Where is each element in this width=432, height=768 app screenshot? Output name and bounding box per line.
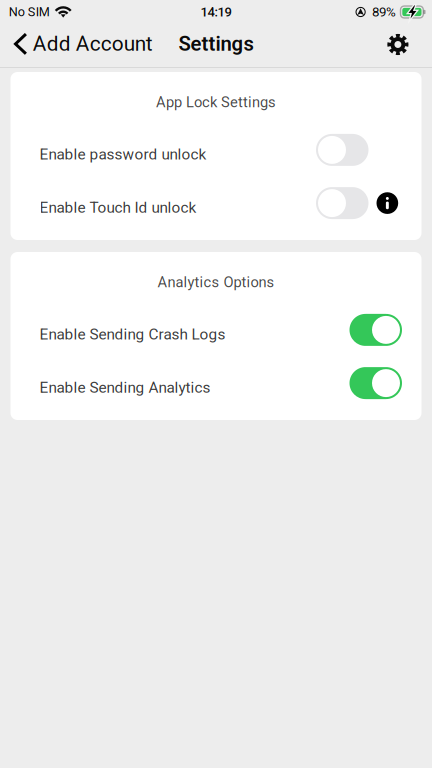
staticText: Add Account <box>33 31 153 56</box>
staticText: Settings <box>178 32 253 56</box>
button[interactable]: Settings <box>375 29 432 62</box>
staticText: 89% <box>372 4 396 20</box>
staticText: Enable Sending Crash Logs <box>39 325 225 343</box>
button[interactable]: Enable password unlock <box>10 128 421 181</box>
staticText: App Lock Settings <box>156 94 276 111</box>
staticText: Enable Touch Id unlock <box>39 198 196 216</box>
button[interactable]: Enable Sending Analytics <box>10 361 421 414</box>
button[interactable]: Enable Touch Id unlock <box>10 181 421 234</box>
staticText: 14:19 <box>200 4 231 20</box>
staticText: Analytics Options <box>157 274 274 291</box>
staticText: No SIM <box>9 5 50 19</box>
staticText: Enable Sending Analytics <box>39 378 210 396</box>
button[interactable]: Enable Sending Crash Logs <box>10 308 421 361</box>
button[interactable]: Add Account <box>0 28 153 63</box>
staticText: Enable password unlock <box>39 145 206 163</box>
